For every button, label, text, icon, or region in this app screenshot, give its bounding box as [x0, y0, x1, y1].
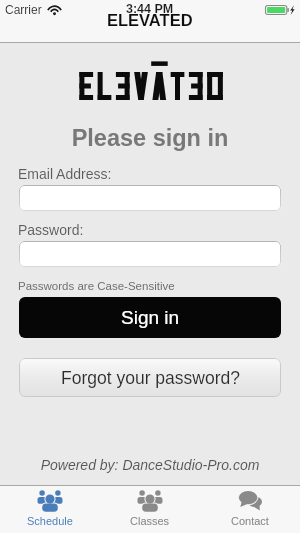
- staticText: ELEVATED: [107, 11, 193, 29]
- staticText: Contact: [231, 515, 269, 527]
- button[interactable]: Contact: [200, 486, 300, 533]
- button[interactable]: [19, 241, 281, 267]
- staticText: Email Address:: [18, 166, 112, 182]
- button[interactable]: [19, 185, 281, 211]
- staticText: Classes: [130, 515, 170, 527]
- staticText: Schedule: [27, 515, 73, 527]
- button[interactable]: Classes: [100, 486, 200, 533]
- button[interactable]: Forgot your password?: [19, 358, 281, 397]
- staticText: Passwords are Case-Sensitive: [18, 280, 175, 293]
- staticText: Password:: [18, 222, 84, 238]
- staticText: Sign in: [121, 307, 180, 328]
- staticText: Please sign in: [0, 125, 300, 151]
- button[interactable]: Schedule: [0, 486, 100, 533]
- staticText: Carrier: [5, 3, 42, 16]
- staticText: Forgot your password?: [61, 368, 240, 388]
- staticText: 3:44 PM: [126, 2, 174, 16]
- button[interactable]: Sign in: [19, 297, 281, 338]
- staticText: Powered by: DanceStudio-Pro.com: [0, 457, 300, 473]
